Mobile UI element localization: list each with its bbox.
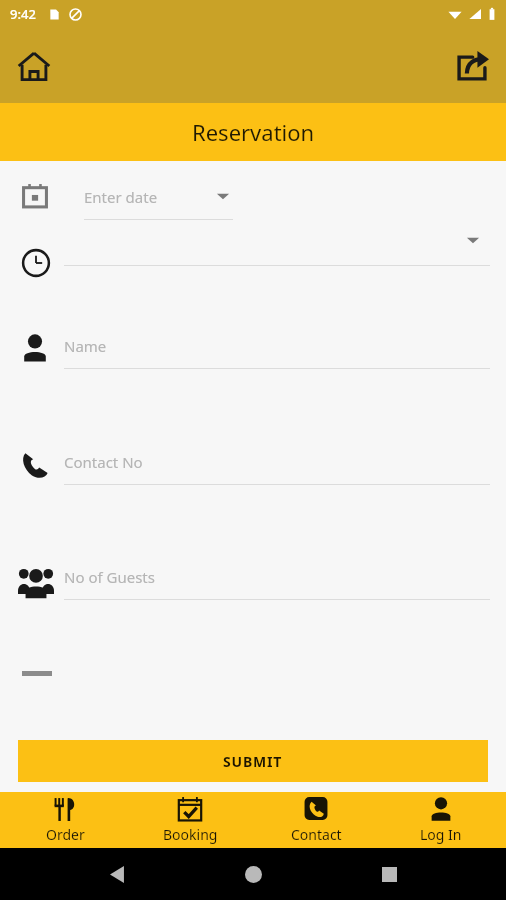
- staticText: Booking: [163, 825, 218, 844]
- button[interactable]: Log In: [381, 792, 501, 848]
- button[interactable]: Home: [235, 856, 271, 892]
- staticText: SUBMIT: [223, 752, 283, 771]
- button[interactable]: Contact: [256, 792, 376, 848]
- button[interactable]: Home: [10, 42, 58, 90]
- staticText: Name: [64, 336, 107, 356]
- staticText: No of Guests: [64, 567, 155, 587]
- button[interactable]: Order: [5, 792, 125, 848]
- staticText: Log In: [420, 825, 462, 844]
- button[interactable]: Back: [100, 856, 136, 892]
- staticText: Reservation: [192, 117, 315, 147]
- staticText: Enter date: [84, 187, 158, 207]
- button[interactable]: Share: [448, 42, 496, 90]
- button[interactable]: SUBMIT: [18, 740, 488, 782]
- staticText: Contact No: [64, 452, 143, 472]
- button[interactable]: Booking: [130, 792, 250, 848]
- staticText: Order: [46, 825, 85, 844]
- button[interactable]: Recent apps: [371, 856, 407, 892]
- staticText: Contact: [291, 825, 342, 844]
- staticText: 9:42: [10, 5, 36, 23]
